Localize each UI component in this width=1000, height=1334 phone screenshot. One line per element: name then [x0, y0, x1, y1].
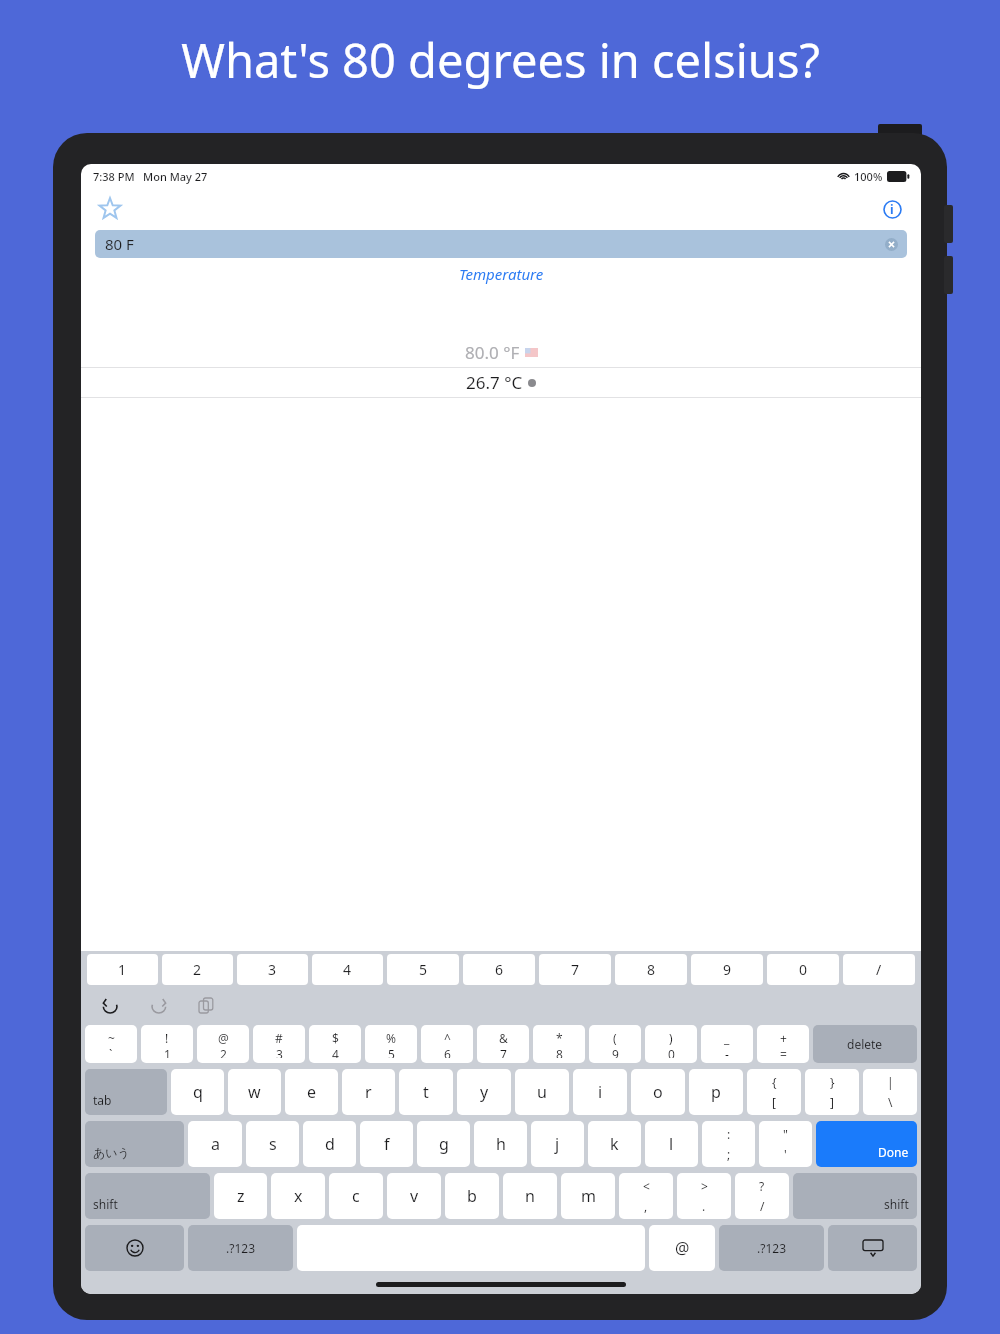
button[interactable]: Redo — [145, 992, 171, 1018]
button[interactable]: c — [329, 1173, 383, 1219]
staticText: j — [555, 1133, 560, 1155]
button[interactable]: h — [474, 1121, 527, 1167]
button[interactable]: @ — [197, 1025, 249, 1063]
button[interactable]: Undo — [97, 992, 123, 1018]
button[interactable]: } — [805, 1069, 859, 1115]
button[interactable]: ~ — [85, 1025, 137, 1063]
staticText: . — [702, 1198, 706, 1214]
button[interactable]: $ — [309, 1025, 361, 1063]
button[interactable]: Emoji — [85, 1225, 184, 1271]
button[interactable]: ) — [645, 1025, 697, 1063]
staticText: ' — [784, 1146, 787, 1162]
button[interactable]: i — [573, 1069, 627, 1115]
button[interactable]: delete — [813, 1025, 917, 1063]
button[interactable]: s — [246, 1121, 299, 1167]
button[interactable]: t — [399, 1069, 453, 1115]
button[interactable]: + — [757, 1025, 809, 1063]
button[interactable]: Information — [877, 194, 907, 224]
button[interactable]: # — [253, 1025, 305, 1063]
button[interactable]: Favorite — [95, 194, 125, 224]
button[interactable]: l — [645, 1121, 698, 1167]
staticText: 80.0 °F — [465, 341, 520, 364]
button[interactable]: * — [533, 1025, 585, 1063]
button[interactable]: < — [619, 1173, 673, 1219]
button[interactable]: 6 — [463, 954, 535, 985]
staticText: , — [644, 1198, 648, 1214]
staticText: 9 — [723, 960, 732, 979]
button[interactable]: d — [303, 1121, 356, 1167]
button[interactable]: 80.0 °F — [81, 338, 921, 367]
button[interactable]: u — [515, 1069, 569, 1115]
button[interactable]: 0 — [767, 954, 839, 985]
button[interactable]: ( — [589, 1025, 641, 1063]
button[interactable]: p — [689, 1069, 743, 1115]
button[interactable]: e — [285, 1069, 338, 1115]
staticText: $ — [332, 1030, 339, 1046]
button[interactable]: z — [214, 1173, 267, 1219]
button[interactable]: Clear text — [883, 236, 899, 252]
button[interactable]: 7 — [539, 954, 611, 985]
staticText: 5 — [419, 960, 428, 979]
staticText: ] — [830, 1094, 834, 1110]
button[interactable]: 2 — [162, 954, 233, 985]
button[interactable]: a — [188, 1121, 242, 1167]
button[interactable]: j — [531, 1121, 584, 1167]
staticText: | — [887, 1074, 894, 1090]
button[interactable]: ! — [141, 1025, 193, 1063]
button[interactable]: Paste — [193, 992, 219, 1018]
button[interactable]: y — [457, 1069, 511, 1115]
button[interactable]: & — [477, 1025, 529, 1063]
button[interactable]: x — [271, 1173, 325, 1219]
button[interactable]: 3 — [237, 954, 308, 985]
button[interactable]: k — [588, 1121, 641, 1167]
button[interactable]: Hide keyboard — [828, 1225, 917, 1271]
staticText: & — [499, 1030, 508, 1046]
button[interactable]: b — [445, 1173, 499, 1219]
button[interactable]: { — [747, 1069, 801, 1115]
button[interactable]: shift — [85, 1173, 210, 1219]
staticText: % — [386, 1030, 396, 1046]
button[interactable]: 26.7 °C — [81, 368, 921, 397]
button[interactable]: | — [863, 1069, 917, 1115]
button[interactable]: w — [228, 1069, 281, 1115]
staticText: x — [294, 1185, 303, 1207]
button[interactable]: f — [360, 1121, 413, 1167]
button[interactable]: 5 — [387, 954, 459, 985]
button[interactable]: " — [759, 1121, 812, 1167]
button[interactable]: shift — [793, 1173, 917, 1219]
button[interactable]: q — [171, 1069, 224, 1115]
button[interactable]: tab — [85, 1069, 167, 1115]
button[interactable]: .?123 — [188, 1225, 293, 1271]
button[interactable]: ? — [735, 1173, 789, 1219]
button[interactable]: 8 — [615, 954, 687, 985]
staticText: shift — [93, 1196, 118, 1212]
button[interactable]: 4 — [312, 954, 383, 985]
button[interactable]: v — [387, 1173, 441, 1219]
button[interactable]: ^ — [421, 1025, 473, 1063]
staticText: v — [410, 1185, 419, 1207]
button[interactable]: / — [843, 954, 915, 985]
staticText: w — [248, 1081, 261, 1103]
button[interactable]: .?123 — [719, 1225, 824, 1271]
button[interactable]: 9 — [691, 954, 763, 985]
button[interactable]: % — [365, 1025, 417, 1063]
button[interactable]: @ — [649, 1225, 715, 1271]
staticText: q — [193, 1081, 203, 1103]
button[interactable]: あいう — [85, 1121, 184, 1167]
staticText: 7 — [500, 1046, 507, 1058]
button[interactable]: : — [702, 1121, 755, 1167]
button[interactable]: 80 F — [95, 230, 907, 258]
staticText: c — [352, 1185, 360, 1207]
button[interactable]: r — [342, 1069, 395, 1115]
button[interactable]: o — [631, 1069, 685, 1115]
button[interactable]: m — [561, 1173, 615, 1219]
button[interactable]: > — [677, 1173, 731, 1219]
button[interactable]: g — [417, 1121, 470, 1167]
staticText: Temperature — [459, 264, 544, 284]
button[interactable]: Done — [816, 1121, 917, 1167]
staticText: ^ — [444, 1030, 451, 1046]
button[interactable]: n — [503, 1173, 557, 1219]
button[interactable]: 1 — [87, 954, 158, 985]
button[interactable]: _ — [701, 1025, 753, 1063]
